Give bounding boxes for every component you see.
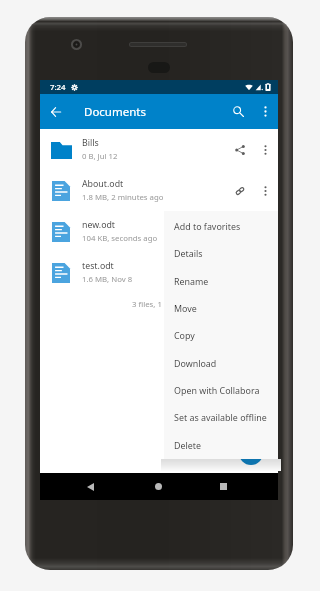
staticText: Rename	[174, 275, 209, 287]
button[interactable]: About.odt	[40, 170, 278, 211]
staticText: About.odt	[82, 178, 124, 190]
button[interactable]: Bills	[40, 129, 278, 170]
button[interactable]: Shared link	[228, 170, 252, 211]
staticText: Download	[174, 357, 217, 369]
button[interactable]: Add to favorites	[164, 212, 278, 239]
button[interactable]: Details	[164, 239, 278, 266]
button[interactable]: Set as available offline	[164, 403, 278, 430]
staticText: new.odt	[82, 219, 116, 231]
button[interactable]: More options	[252, 94, 278, 129]
staticText: 7:24	[50, 82, 66, 93]
button[interactable]: Move	[164, 294, 278, 321]
staticText: 1.6 MB, Nov 8	[82, 274, 133, 285]
button[interactable]: test.odt	[40, 252, 278, 293]
staticText: 0 B, Jul 12	[82, 151, 118, 162]
button[interactable]: Open with Collabora	[164, 376, 278, 403]
staticText: Open with Collabora	[174, 384, 260, 396]
button[interactable]: More options	[252, 129, 278, 170]
staticText: 3 files, 1 folder	[132, 299, 186, 310]
button[interactable]: new.odt	[40, 211, 278, 252]
button[interactable]: Share	[228, 129, 252, 170]
staticText: 104 KB, seconds ago	[82, 233, 158, 244]
staticText: test.odt	[82, 260, 114, 272]
button[interactable]: Rename	[164, 267, 278, 294]
button[interactable]: Shared link	[228, 211, 252, 252]
button[interactable]: Download	[164, 349, 278, 376]
staticText: Documents	[84, 104, 146, 120]
staticText: Bills	[82, 137, 99, 149]
staticText: Copy	[174, 329, 195, 341]
button[interactable]: More options	[252, 170, 278, 211]
staticText: Delete	[174, 439, 202, 451]
button[interactable]: Navigate up	[40, 94, 72, 129]
staticText: Add to favorites	[174, 220, 241, 232]
button[interactable]: Search	[224, 94, 252, 129]
staticText: Move	[174, 302, 197, 314]
button[interactable]: Add new file	[239, 441, 263, 465]
staticText: Details	[174, 247, 203, 259]
button[interactable]: Copy	[164, 321, 278, 348]
staticText: 1.8 MB, 2 minutes ago	[82, 192, 164, 203]
staticText: Set as available offline	[174, 411, 267, 423]
button[interactable]: Delete	[164, 431, 278, 458]
